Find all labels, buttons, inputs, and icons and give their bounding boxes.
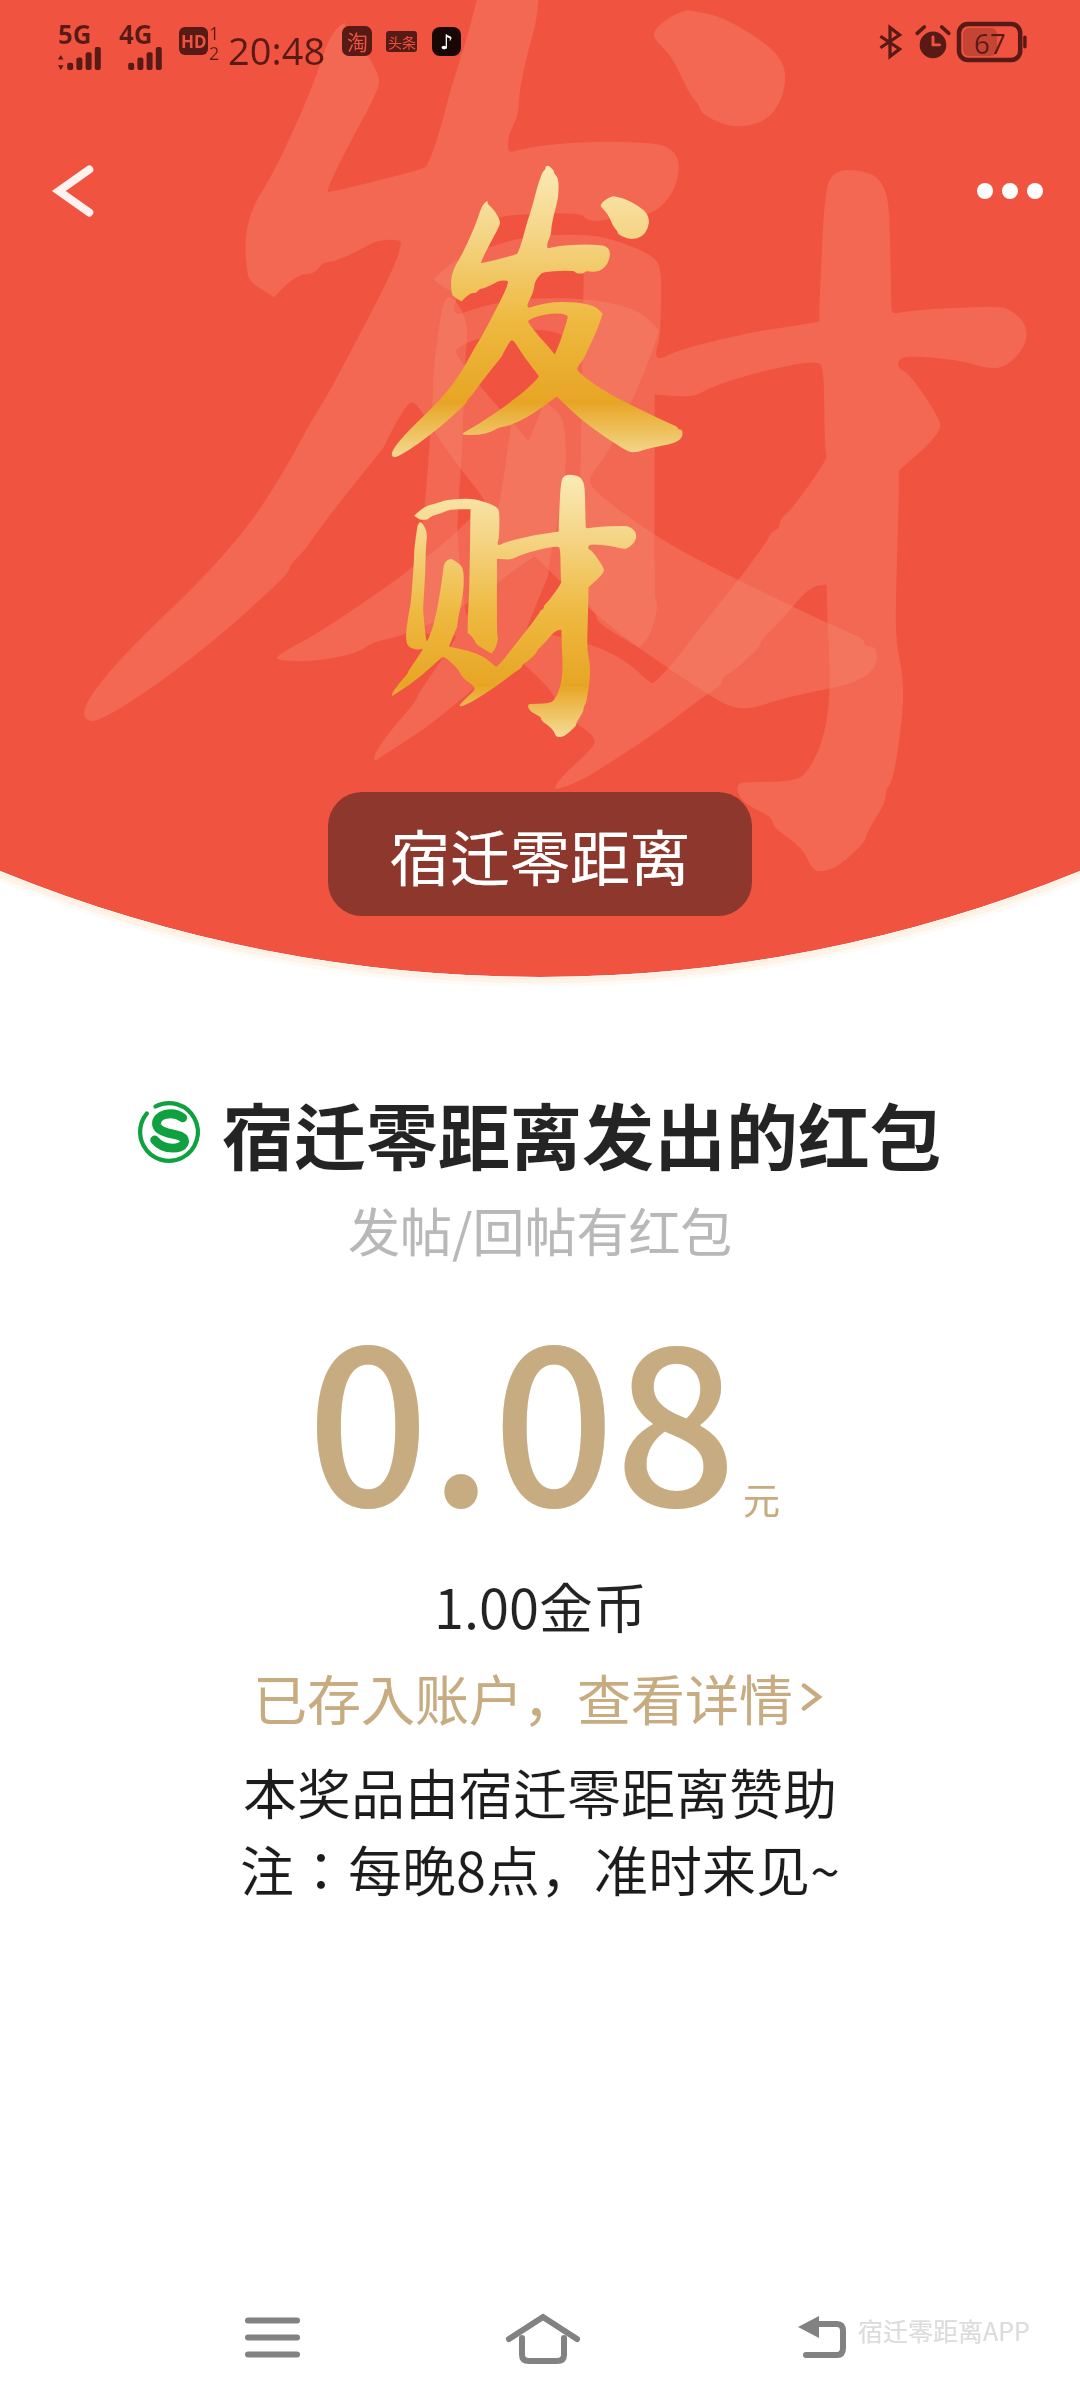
- staticText: 淘: [347, 26, 368, 56]
- button[interactable]: 宿迁零距离: [328, 792, 752, 916]
- staticText: 1.00金币: [434, 1566, 647, 1644]
- staticText: ♪: [440, 30, 453, 53]
- staticText: 头条: [388, 32, 416, 52]
- button[interactable]: 已存入账户，查看详情: [253, 1658, 827, 1736]
- staticText: 元: [743, 1472, 780, 1526]
- button[interactable]: Recent apps: [196, 2270, 346, 2400]
- staticText: 5G: [58, 16, 92, 51]
- button[interactable]: Back: [30, 140, 108, 242]
- staticText: 4G: [119, 16, 153, 51]
- staticText: 宿迁零距离发出的红包: [222, 1080, 943, 1184]
- staticText: 发帖/回帖有红包: [348, 1192, 733, 1267]
- button[interactable]: More options: [955, 158, 1065, 224]
- staticText: 发: [30, 0, 930, 750]
- staticText: 本奖品由宿迁零距离赞助: [243, 1752, 837, 1830]
- staticText: 财: [368, 452, 660, 744]
- staticText: HD: [181, 30, 207, 53]
- staticText: 宿迁零距离APP: [858, 2312, 1030, 2348]
- staticText: 已存入账户，查看详情: [253, 1658, 793, 1736]
- staticText: 2: [209, 41, 220, 66]
- button[interactable]: Home: [465, 2270, 615, 2400]
- staticText: 注：每晚8点，准时来见~: [240, 1829, 840, 1907]
- staticText: 67: [974, 24, 1007, 60]
- staticText: 财: [310, 110, 1080, 890]
- staticText: 宿迁零距离: [390, 811, 690, 898]
- staticText: 1: [209, 21, 220, 46]
- staticText: 0.08: [307, 1258, 737, 1568]
- staticText: 20:48: [228, 24, 326, 76]
- button[interactable]: Back: [748, 2270, 898, 2400]
- staticText: 发: [372, 138, 702, 468]
